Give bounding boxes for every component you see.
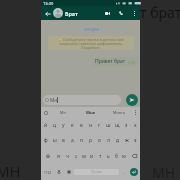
staticText: ь xyxy=(107,153,110,160)
button[interactable]: Много xyxy=(105,107,133,118)
staticText: з xyxy=(125,122,128,129)
button[interactable]: э xyxy=(131,133,140,148)
button[interactable]: х xyxy=(131,118,140,133)
button[interactable]: Shift xyxy=(41,148,54,164)
staticText: й xyxy=(44,122,48,129)
button[interactable]: б xyxy=(112,148,120,164)
staticText: т брат xyxy=(140,3,180,22)
staticText: СЕГОДНЯ xyxy=(84,28,99,32)
staticText: Мн xyxy=(60,110,66,115)
button[interactable]: Call xyxy=(117,9,125,17)
button[interactable]: Enter xyxy=(130,168,138,176)
button[interactable]: д xyxy=(113,133,122,148)
button[interactable]: ?123 xyxy=(41,164,54,180)
button[interactable]: я xyxy=(54,148,63,164)
staticText: ш xyxy=(106,122,111,129)
button[interactable]: ф xyxy=(41,133,50,148)
button[interactable]: Send xyxy=(126,94,138,106)
staticText: ч xyxy=(66,153,69,160)
button[interactable]: Мне xyxy=(77,107,105,118)
button[interactable]: п xyxy=(77,133,86,148)
staticText: 🔒 Сообщения и звонки в данном чате защищ… xyxy=(50,37,132,50)
button[interactable]: Back xyxy=(43,9,52,18)
staticText: Мн xyxy=(50,97,57,103)
button[interactable]: с xyxy=(72,148,80,164)
staticText: 13:30 xyxy=(128,61,136,65)
button[interactable]: т xyxy=(96,148,104,164)
staticText: Брат xyxy=(65,10,78,17)
staticText: ю xyxy=(122,153,126,160)
staticText: а xyxy=(71,137,74,144)
button[interactable]: ч xyxy=(63,148,72,164)
staticText: у xyxy=(62,122,65,129)
button[interactable]: Мн xyxy=(43,95,121,105)
button[interactable]: н xyxy=(86,118,95,133)
button[interactable]: Video call xyxy=(103,9,111,17)
staticText: в xyxy=(62,137,65,144)
staticText: э xyxy=(134,137,137,144)
button[interactable]: у xyxy=(59,118,68,133)
button[interactable]: 🔒 Сообщения и звонки в данном чате защищ… xyxy=(48,36,134,50)
staticText: б xyxy=(115,153,118,160)
button[interactable]: ж xyxy=(122,133,131,148)
staticText: Привет брат xyxy=(95,58,126,65)
staticText: к xyxy=(71,122,74,129)
button[interactable]: ь xyxy=(104,148,112,164)
button[interactable]: р xyxy=(86,133,95,148)
staticText: о xyxy=(98,137,101,144)
button[interactable]: а xyxy=(68,133,77,148)
staticText: щ xyxy=(115,122,120,129)
staticText: МН xyxy=(152,163,176,180)
staticText: и xyxy=(90,153,94,160)
button[interactable]: Keyboard options xyxy=(133,107,138,118)
button[interactable]: Google search xyxy=(43,110,49,116)
staticText: д xyxy=(116,137,120,144)
button[interactable]: г xyxy=(95,118,104,133)
staticText: х xyxy=(134,122,137,129)
staticText: Мне xyxy=(86,110,96,116)
staticText: ж xyxy=(125,137,129,144)
staticText: 13:30 xyxy=(43,1,54,6)
button[interactable]: Space xyxy=(74,169,119,175)
button[interactable]: More options xyxy=(131,10,138,17)
staticText: ц xyxy=(53,122,57,129)
button[interactable]: о xyxy=(95,133,104,148)
button[interactable]: е xyxy=(77,118,86,133)
staticText: р xyxy=(89,137,93,144)
button[interactable]: СЕГОДНЯ xyxy=(81,27,101,32)
staticText: ф xyxy=(44,137,48,144)
button[interactable]: Voice input xyxy=(54,164,64,180)
staticText: е xyxy=(80,122,83,129)
button[interactable]: Мн xyxy=(49,107,77,118)
staticText: Русский xyxy=(91,170,102,174)
button[interactable]: ш xyxy=(104,118,113,133)
button[interactable]: й xyxy=(41,118,50,133)
staticText: т xyxy=(99,153,102,160)
button[interactable]: ц xyxy=(50,118,59,133)
staticText: ?123 xyxy=(44,170,52,175)
button[interactable]: ю xyxy=(120,148,128,164)
staticText: я xyxy=(57,153,60,160)
staticText: с xyxy=(75,153,78,160)
button[interactable]: к xyxy=(68,118,77,133)
staticText: г xyxy=(98,122,101,129)
staticText: л xyxy=(107,137,110,144)
button[interactable]: з xyxy=(122,118,131,133)
button[interactable]: щ xyxy=(113,118,122,133)
button[interactable]: м xyxy=(80,148,88,164)
staticText: Много xyxy=(113,110,125,115)
staticText: ы xyxy=(53,137,57,144)
button[interactable]: Emoji xyxy=(64,164,74,180)
button[interactable]: Backspace xyxy=(128,148,140,164)
staticText: МН xyxy=(0,161,21,180)
staticText: . xyxy=(123,169,125,175)
staticText: п xyxy=(80,137,84,144)
button[interactable]: и xyxy=(88,148,96,164)
button[interactable]: Привет брат xyxy=(93,57,138,66)
button[interactable]: л xyxy=(104,133,113,148)
staticText: н xyxy=(89,122,93,129)
button[interactable]: ы xyxy=(50,133,59,148)
staticText: м xyxy=(82,153,86,160)
button[interactable]: в xyxy=(59,133,68,148)
